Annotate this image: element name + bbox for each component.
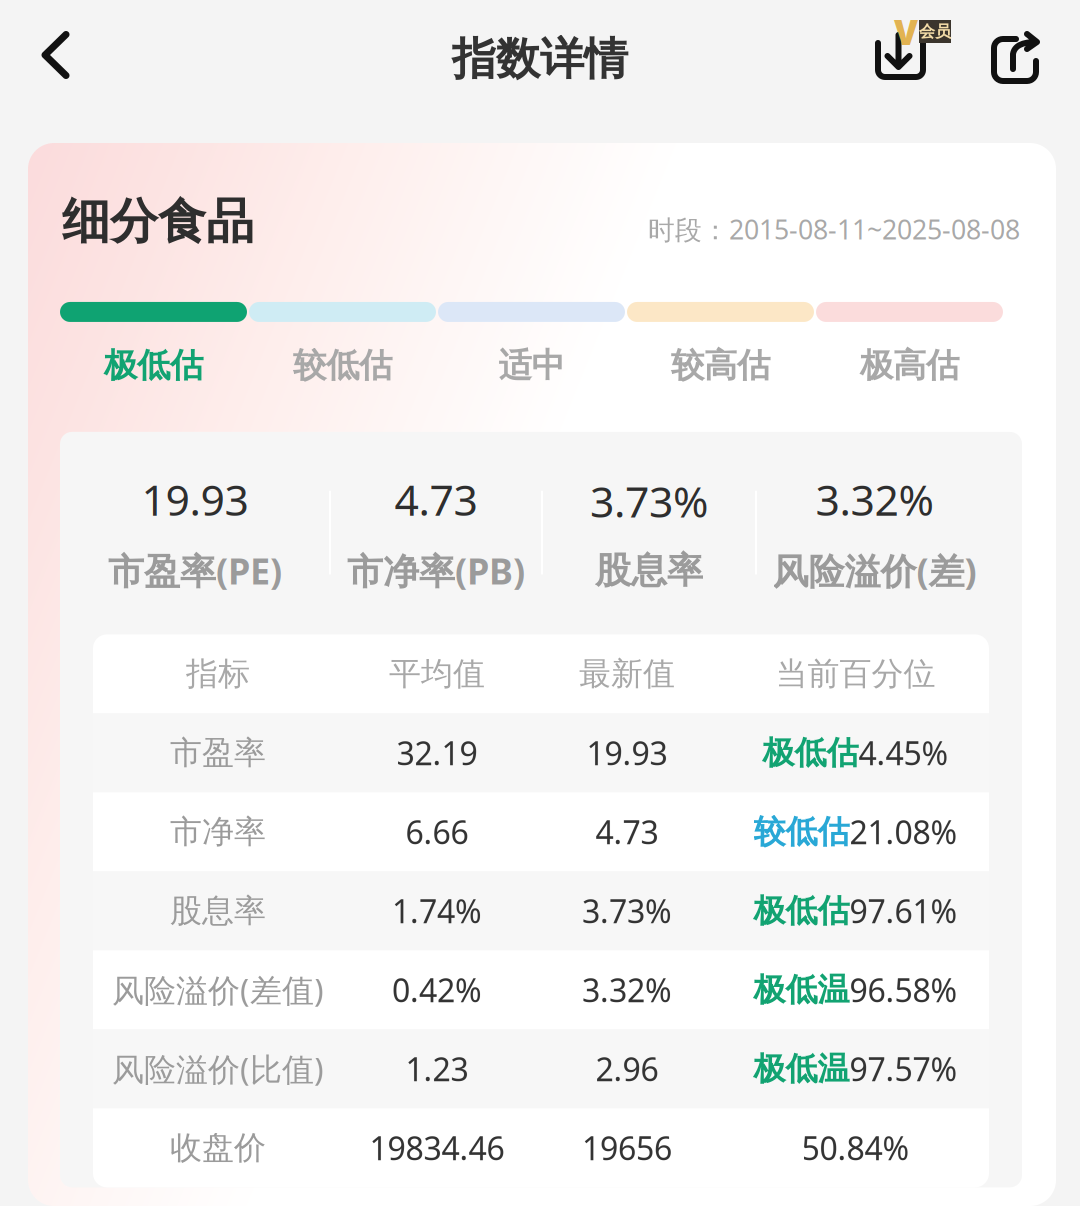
staticText: 最新值 <box>579 654 675 693</box>
staticText: 3.32% <box>815 471 933 528</box>
staticText: 指数详情 <box>452 32 628 86</box>
staticText: 2.96 <box>595 1048 658 1090</box>
staticText: 19834.46 <box>369 1127 504 1169</box>
staticText: 收盘价 <box>170 1128 266 1167</box>
staticText: 0.42% <box>392 969 482 1011</box>
staticText: V <box>894 8 918 54</box>
staticText: 97.61% <box>849 890 957 932</box>
staticText: 时段：2015-08-11~2025-08-08 <box>648 211 1020 247</box>
staticText: 指标 <box>186 654 250 693</box>
staticText: 4.73 <box>394 471 477 528</box>
staticText: 极低温 <box>753 970 849 1009</box>
staticText: 21.08% <box>849 811 957 853</box>
staticText: 50.84% <box>801 1127 909 1169</box>
staticText: 市净率 <box>170 812 266 851</box>
staticText: 市盈率 <box>170 733 266 772</box>
staticText: 当前百分位 <box>775 654 935 693</box>
button[interactable]: Back <box>0 0 70 118</box>
staticText: 3.32% <box>582 969 672 1011</box>
staticText: 平均值 <box>389 654 485 693</box>
staticText: 极高估 <box>860 345 959 386</box>
staticText: 市盈率(PE) <box>108 547 282 594</box>
staticText: 4.73 <box>595 811 658 853</box>
staticText: 风险溢价(差值) <box>112 969 324 1011</box>
staticText: 19.93 <box>586 732 667 774</box>
staticText: 会员 <box>919 22 951 41</box>
staticText: 较高估 <box>671 345 770 386</box>
staticText: 细分食品 <box>62 192 254 251</box>
staticText: 极低估 <box>104 345 203 386</box>
button[interactable]: Share <box>991 0 1039 118</box>
staticText: 96.58% <box>849 969 957 1011</box>
staticText: 6.66 <box>405 811 468 853</box>
staticText: 1.23 <box>405 1048 468 1090</box>
staticText: 32.19 <box>396 732 477 774</box>
staticText: 风险溢价(比值) <box>112 1048 324 1090</box>
staticText: 股息率 <box>595 548 703 593</box>
staticText: 极低估 <box>753 891 849 930</box>
staticText: 3.73% <box>590 473 708 529</box>
staticText: 19656 <box>582 1127 672 1169</box>
staticText: 股息率 <box>170 891 266 930</box>
button[interactable]: Download <box>875 0 951 118</box>
staticText: 4.45% <box>858 732 948 774</box>
staticText: 19.93 <box>141 471 248 528</box>
staticText: 极低估 <box>762 733 858 772</box>
staticText: 风险溢价(差) <box>772 547 976 594</box>
staticText: 3.73% <box>582 890 672 932</box>
staticText: 97.57% <box>849 1048 957 1090</box>
staticText: 较低估 <box>753 812 849 851</box>
staticText: 较低估 <box>293 345 392 386</box>
staticText: 适中 <box>498 345 564 386</box>
staticText: 市净率(PB) <box>347 547 525 594</box>
staticText: 极低温 <box>753 1049 849 1088</box>
staticText: 1.74% <box>392 890 482 932</box>
